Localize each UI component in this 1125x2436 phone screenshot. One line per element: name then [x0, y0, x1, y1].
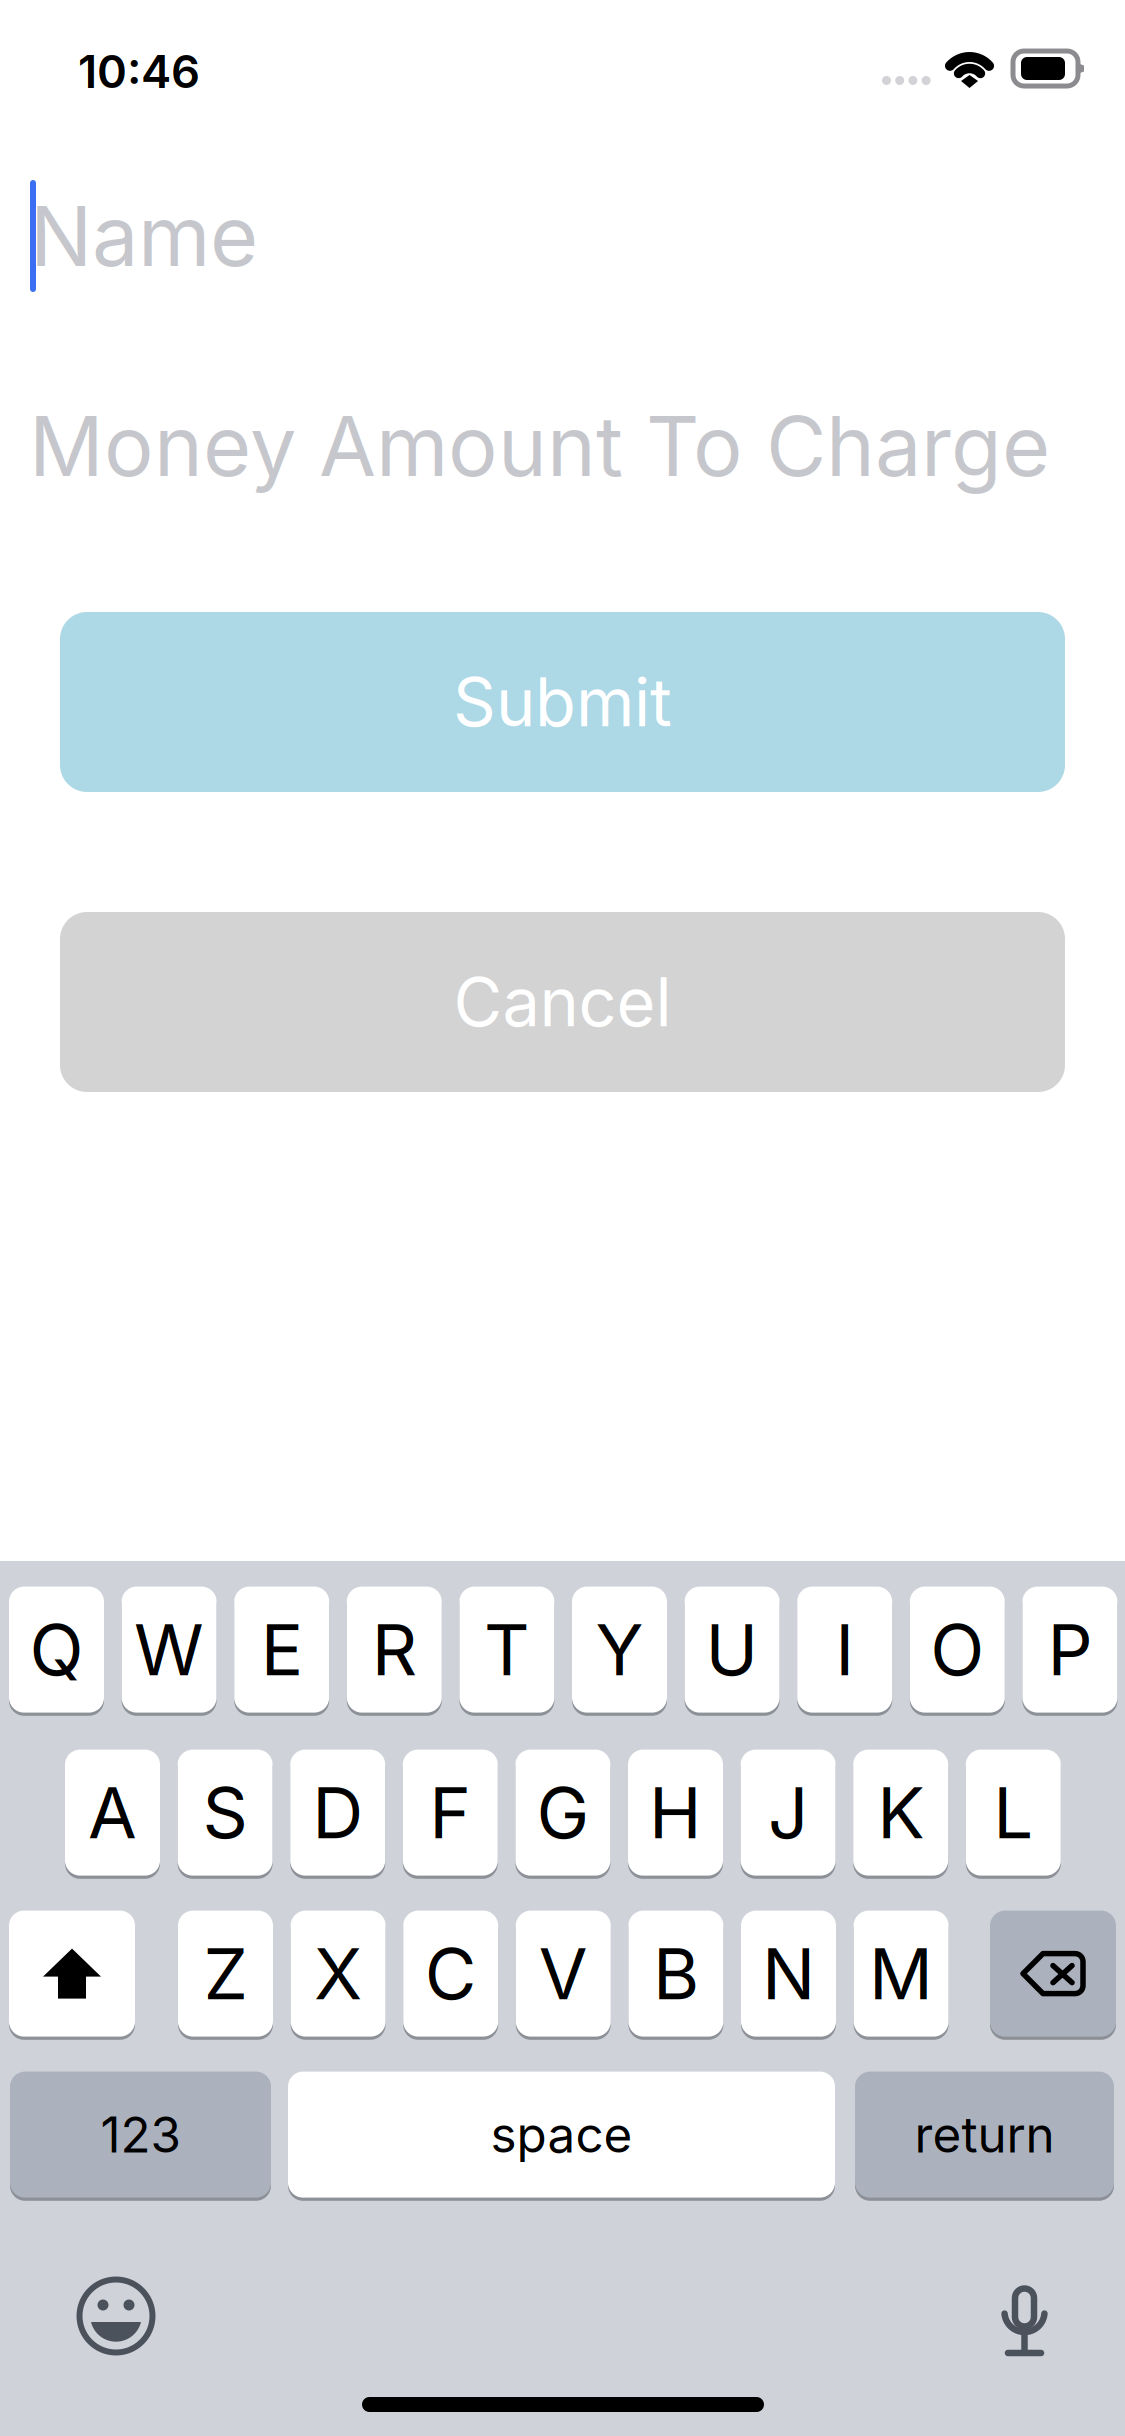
staticText: J [768, 1770, 808, 1855]
staticText: K [877, 1770, 924, 1855]
button[interactable]: S [178, 1748, 273, 1877]
staticText: L [993, 1770, 1033, 1855]
staticText: 10:46 [78, 44, 200, 99]
button[interactable]: E [234, 1585, 329, 1714]
button[interactable]: B [628, 1909, 723, 2038]
staticText: N [762, 1931, 815, 2016]
button[interactable]: H [628, 1748, 723, 1877]
button[interactable]: Cancel [60, 912, 1065, 1092]
staticText: T [484, 1607, 530, 1692]
button[interactable]: Name [0, 150, 1125, 330]
button[interactable]: N [741, 1909, 836, 2038]
staticText: A [88, 1770, 137, 1855]
button[interactable]: V [516, 1909, 611, 2038]
button[interactable]: X [291, 1909, 386, 2038]
staticText: H [649, 1770, 702, 1855]
staticText: C [425, 1931, 477, 2016]
button[interactable]: R [347, 1585, 442, 1714]
button[interactable]: 123 [10, 2070, 271, 2199]
staticText: B [653, 1931, 699, 2016]
button[interactable]: return [855, 2070, 1114, 2199]
staticText: O [930, 1607, 984, 1692]
button[interactable]: I [797, 1585, 892, 1714]
button[interactable]: M [854, 1909, 949, 2038]
staticText: P [1047, 1607, 1092, 1692]
button[interactable]: Dictation [1001, 2283, 1048, 2357]
staticText: Cancel [453, 962, 671, 1042]
staticText: space [490, 2105, 632, 2164]
staticText: return [914, 2105, 1054, 2164]
button[interactable]: Money Amount To Charge [0, 366, 1125, 546]
staticText: W [134, 1607, 204, 1692]
staticText: E [261, 1607, 303, 1692]
button[interactable]: Delete [990, 1909, 1116, 2038]
staticText: G [536, 1770, 589, 1855]
button[interactable]: W [122, 1585, 217, 1714]
staticText: Y [595, 1607, 643, 1692]
staticText: Z [203, 1931, 247, 2016]
staticText: F [429, 1770, 471, 1855]
staticText: Name [30, 186, 258, 286]
staticText: Money Amount To Charge [29, 396, 1050, 496]
staticText: V [539, 1931, 588, 2016]
button[interactable]: L [966, 1748, 1061, 1877]
button[interactable]: P [1022, 1585, 1117, 1714]
button[interactable]: D [290, 1748, 385, 1877]
button[interactable]: J [741, 1748, 836, 1877]
button[interactable]: F [403, 1748, 498, 1877]
staticText: R [372, 1607, 417, 1692]
button[interactable]: Emoji [77, 2277, 155, 2355]
staticText: D [312, 1770, 363, 1855]
button[interactable]: Z [178, 1909, 273, 2038]
staticText: X [314, 1931, 362, 2016]
button[interactable]: T [459, 1585, 554, 1714]
staticText: M [869, 1931, 933, 2016]
button[interactable]: O [910, 1585, 1005, 1714]
button[interactable]: G [515, 1748, 610, 1877]
staticText: U [706, 1607, 759, 1692]
button[interactable]: U [685, 1585, 780, 1714]
button[interactable]: Y [572, 1585, 667, 1714]
staticText: Q [29, 1607, 83, 1692]
button[interactable]: A [65, 1748, 160, 1877]
staticText: S [203, 1770, 248, 1855]
staticText: Submit [453, 662, 672, 742]
staticText: 123 [100, 2105, 180, 2164]
button[interactable]: K [853, 1748, 948, 1877]
button[interactable]: Submit [60, 612, 1065, 792]
staticText: I [835, 1607, 854, 1692]
button[interactable]: C [403, 1909, 498, 2038]
button[interactable]: Q [9, 1585, 104, 1714]
button[interactable]: Shift [9, 1909, 135, 2038]
button[interactable]: space [288, 2070, 835, 2199]
